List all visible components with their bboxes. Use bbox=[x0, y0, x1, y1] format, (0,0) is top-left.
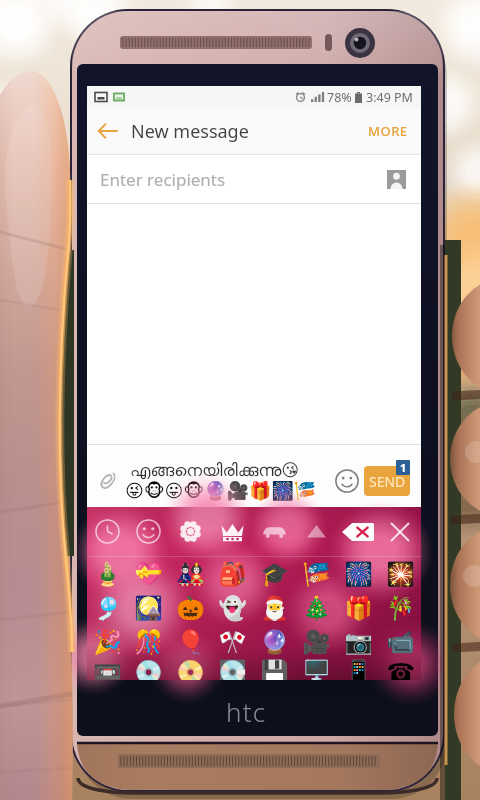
button[interactable]: Back bbox=[87, 108, 127, 154]
button[interactable]: Emoji bbox=[253, 625, 295, 659]
staticText: 🎐 bbox=[93, 595, 122, 622]
button[interactable]: Emoji bbox=[169, 557, 211, 591]
staticText: 👻 bbox=[218, 595, 247, 622]
staticText: 🎊 bbox=[134, 629, 163, 656]
button[interactable]: Emoji bbox=[337, 557, 379, 591]
button[interactable]: Emoji bbox=[87, 659, 128, 680]
button[interactable]: Backspace bbox=[337, 507, 379, 556]
staticText: 🎓 bbox=[260, 561, 289, 588]
button[interactable]: Emoji bbox=[253, 591, 295, 625]
staticText: htc bbox=[226, 694, 267, 729]
button[interactable]: Emoji bbox=[379, 659, 421, 680]
button[interactable]: Emoji bbox=[169, 659, 211, 680]
staticText: 🎁 bbox=[344, 595, 373, 622]
staticText: 💿 bbox=[134, 659, 163, 680]
staticText: 🖥️ bbox=[302, 659, 331, 680]
staticText: 🎇 bbox=[386, 561, 415, 588]
staticText: 🔮 bbox=[260, 629, 289, 656]
button[interactable]: Emoji bbox=[379, 625, 421, 659]
button[interactable]: Smileys bbox=[128, 507, 169, 556]
button[interactable]: Emoji bbox=[169, 625, 211, 659]
button[interactable]: Emoji bbox=[295, 591, 337, 625]
staticText: 📹 bbox=[386, 629, 415, 656]
button[interactable]: Emoji bbox=[211, 557, 253, 591]
staticText: 💝 bbox=[134, 561, 163, 588]
staticText: MORE bbox=[368, 122, 408, 140]
staticText: 💾 bbox=[260, 659, 289, 680]
staticText: New message bbox=[131, 119, 249, 144]
button[interactable]: SEND bbox=[364, 466, 410, 496]
button[interactable]: Attach bbox=[95, 459, 119, 503]
button[interactable]: Emoji bbox=[295, 625, 337, 659]
staticText: 🎈 bbox=[176, 629, 205, 656]
button[interactable]: Recent bbox=[87, 507, 128, 556]
button[interactable]: Emoji bbox=[295, 659, 337, 680]
staticText: എങ്ങനെയിരിക്കുന്നു😘 bbox=[130, 460, 300, 480]
button[interactable]: Emoji bbox=[253, 557, 295, 591]
staticText: 🎃 bbox=[176, 595, 205, 622]
staticText: 🎅 bbox=[260, 595, 289, 622]
button[interactable]: Symbols bbox=[295, 507, 337, 556]
staticText: 3:49 PM bbox=[366, 89, 413, 106]
button[interactable]: Close keyboard bbox=[379, 507, 421, 556]
staticText: 📀 bbox=[176, 659, 205, 680]
button[interactable]: Emoji bbox=[379, 557, 421, 591]
staticText: 📼 bbox=[93, 659, 122, 680]
button[interactable]: Emoji bbox=[169, 591, 211, 625]
button[interactable]: Emoji bbox=[337, 625, 379, 659]
staticText: 🎒 bbox=[218, 561, 247, 588]
button[interactable]: Emoji bbox=[128, 659, 169, 680]
staticText: 🎑 bbox=[134, 595, 163, 622]
button[interactable]: Emoji bbox=[253, 659, 295, 680]
staticText: 78% bbox=[327, 89, 352, 106]
staticText: ☎️ bbox=[386, 659, 415, 680]
staticText: 😜🐵😛🐵🔮🎥🎁🎆🎏 bbox=[125, 480, 317, 501]
staticText: 🎎 bbox=[176, 561, 205, 588]
button[interactable]: Add contacts bbox=[383, 166, 409, 192]
staticText: 🎆 bbox=[344, 561, 373, 588]
staticText: SEND bbox=[369, 472, 406, 491]
button[interactable]: Emoji bbox=[379, 591, 421, 625]
button[interactable]: Emoji bbox=[295, 557, 337, 591]
button[interactable]: Emoji bbox=[211, 591, 253, 625]
staticText: 📱 bbox=[344, 659, 373, 680]
button[interactable]: Emoji bbox=[337, 591, 379, 625]
staticText: 🎋 bbox=[386, 595, 415, 622]
button[interactable]: Emoji bbox=[211, 659, 253, 680]
staticText: 🎍 bbox=[93, 561, 122, 588]
button[interactable]: Emoji bbox=[330, 460, 364, 502]
button[interactable]: Emoji bbox=[128, 625, 169, 659]
staticText: Enter recipients bbox=[100, 168, 226, 191]
staticText: 🎌 bbox=[218, 629, 247, 656]
staticText: 📷 bbox=[344, 629, 373, 656]
button[interactable]: Celebration bbox=[211, 507, 253, 556]
button[interactable]: Emoji bbox=[128, 557, 169, 591]
button[interactable]: Emoji bbox=[87, 557, 128, 591]
button[interactable]: Emoji bbox=[128, 591, 169, 625]
staticText: 🎏 bbox=[302, 561, 331, 588]
staticText: 💽 bbox=[218, 659, 247, 680]
button[interactable]: Nature bbox=[169, 507, 211, 556]
button[interactable]: Travel bbox=[253, 507, 295, 556]
button[interactable]: Enter recipients bbox=[87, 155, 421, 203]
button[interactable]: Emoji bbox=[87, 625, 128, 659]
staticText: 🎉 bbox=[93, 629, 122, 656]
button[interactable]: MORE bbox=[355, 108, 421, 154]
staticText: 🎄 bbox=[302, 595, 331, 622]
button[interactable]: Emoji bbox=[211, 625, 253, 659]
button[interactable]: Emoji bbox=[87, 591, 128, 625]
staticText: 🎥 bbox=[302, 629, 331, 656]
button[interactable]: Emoji bbox=[337, 659, 379, 680]
staticText: 1 bbox=[400, 460, 407, 475]
